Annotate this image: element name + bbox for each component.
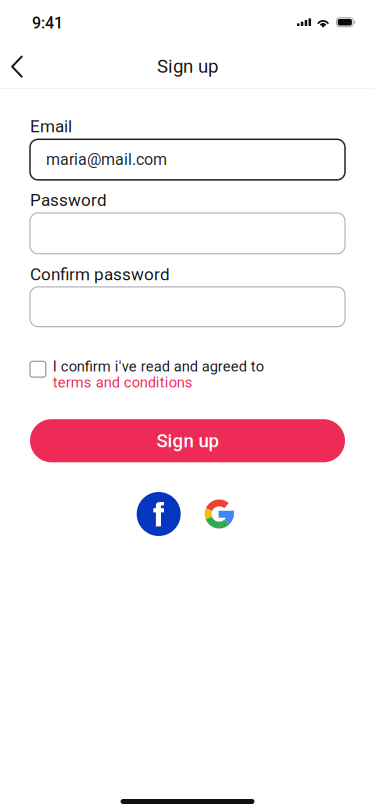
- staticText: Password: [30, 190, 107, 210]
- button[interactable]: Sign up with Google: [197, 492, 241, 536]
- button[interactable]: [30, 287, 345, 327]
- staticText: Sign up: [157, 55, 218, 77]
- staticText: Sign up: [156, 430, 218, 452]
- staticText: I confirm i've read and agreed to: [53, 358, 264, 375]
- button[interactable]: Back: [0, 45, 39, 89]
- staticText: Confirm password: [30, 264, 170, 284]
- button[interactable]: Sign up with Facebook: [137, 492, 181, 536]
- staticText: 9:41: [32, 14, 63, 32]
- button[interactable]: I confirm i've read and agreed to: [30, 360, 345, 396]
- button[interactable]: Sign up: [30, 419, 345, 462]
- button[interactable]: maria@mail.com: [30, 139, 345, 180]
- staticText: Email: [30, 116, 72, 136]
- button[interactable]: [30, 213, 345, 254]
- staticText: terms and conditions: [53, 374, 193, 391]
- staticText: maria@mail.com: [46, 150, 167, 169]
